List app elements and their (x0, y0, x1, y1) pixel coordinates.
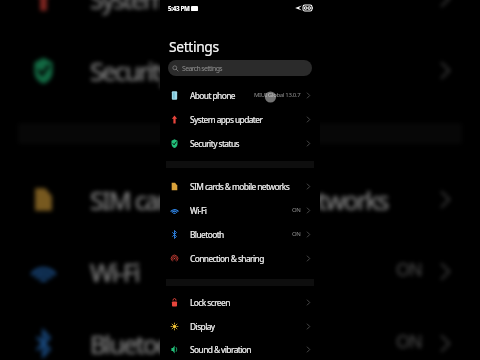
button[interactable]: System apps updater (160, 107, 320, 131)
button[interactable]: Bluetooth (0, 306, 480, 360)
staticText: System apps updater (90, 0, 309, 15)
button[interactable]: SIM cards & mobile networks (160, 174, 320, 198)
staticText: MIUI Global 13.0.7 (254, 91, 301, 99)
button[interactable]: Security status (160, 131, 320, 155)
staticText: Connection & sharing (190, 253, 264, 264)
button[interactable]: Sound & vibration (160, 338, 320, 360)
staticText: Wi-Fi (190, 205, 207, 216)
staticText: About phone (190, 90, 235, 101)
staticText: SIM cards & mobile networks (190, 181, 290, 192)
staticText: ON (292, 230, 301, 238)
button[interactable]: System apps updater (0, 0, 480, 33)
staticText: Security status (190, 138, 239, 149)
staticText: Display (190, 321, 215, 332)
staticText: System apps updater (190, 114, 263, 125)
button[interactable]: SIM cards & mobile networks (0, 162, 480, 234)
staticText: ON (292, 206, 301, 214)
staticText: Bluetooth (190, 229, 224, 240)
staticText: 5:43 PM (168, 4, 190, 12)
staticText: Lock screen (190, 297, 230, 308)
staticText: Search settings (182, 64, 223, 73)
button[interactable]: Lock screen (160, 290, 320, 314)
button[interactable]: Connection & sharing (160, 246, 320, 270)
button[interactable]: Wi-Fi (0, 234, 480, 306)
staticText: ON (396, 330, 423, 354)
staticText: Sound & vibration (190, 344, 251, 355)
staticText: Settings (169, 37, 219, 56)
button[interactable]: Search settings (168, 60, 312, 76)
button[interactable]: Wi-Fi (160, 198, 320, 222)
staticText: Security status (90, 54, 237, 87)
button[interactable]: Security status (0, 33, 480, 105)
button[interactable]: Bluetooth (160, 222, 320, 246)
staticText: ON (396, 258, 423, 282)
button[interactable]: About phone (160, 83, 320, 107)
staticText: Wi-Fi (90, 255, 141, 288)
staticText: SIM cards & mobile networks (90, 183, 390, 216)
staticText: Bluetooth (90, 327, 192, 360)
button[interactable]: Display (160, 314, 320, 338)
